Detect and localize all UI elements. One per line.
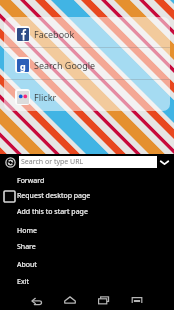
button[interactable]: Exit <box>0 274 174 290</box>
staticText: Exit <box>17 277 29 287</box>
staticText: Flickr <box>34 91 57 103</box>
staticText: Home <box>17 226 37 236</box>
button[interactable]: Home <box>0 223 174 239</box>
button[interactable]: About <box>0 257 174 273</box>
button[interactable]: Add this to start page <box>0 204 174 220</box>
button[interactable]: Facebook <box>4 17 170 47</box>
staticText: Share <box>17 242 36 252</box>
button[interactable]: Recent apps <box>98 294 110 306</box>
staticText: Add this to start page <box>17 207 88 217</box>
staticText: Search or type URL <box>21 157 84 167</box>
staticText: Forward <box>17 176 45 186</box>
button[interactable]: Search or type URL <box>19 156 157 168</box>
button[interactable]: g <box>4 48 170 79</box>
staticText: Request desktop page <box>17 191 91 201</box>
button[interactable]: Home <box>64 294 76 306</box>
button[interactable]: Keyboard <box>131 294 143 306</box>
button[interactable]: Show tabs <box>158 156 170 168</box>
button[interactable]: Share <box>0 239 174 255</box>
staticText: g <box>20 60 26 72</box>
button[interactable]: Request desktop page <box>0 188 174 204</box>
button[interactable]: Forward <box>0 173 174 189</box>
staticText: Facebook <box>34 28 75 40</box>
button[interactable]: Flickr <box>4 80 170 111</box>
staticText: About <box>17 260 37 270</box>
staticText: Search Google <box>34 59 96 71</box>
button[interactable]: Back <box>30 294 42 306</box>
button[interactable]: Reload page <box>4 156 16 168</box>
